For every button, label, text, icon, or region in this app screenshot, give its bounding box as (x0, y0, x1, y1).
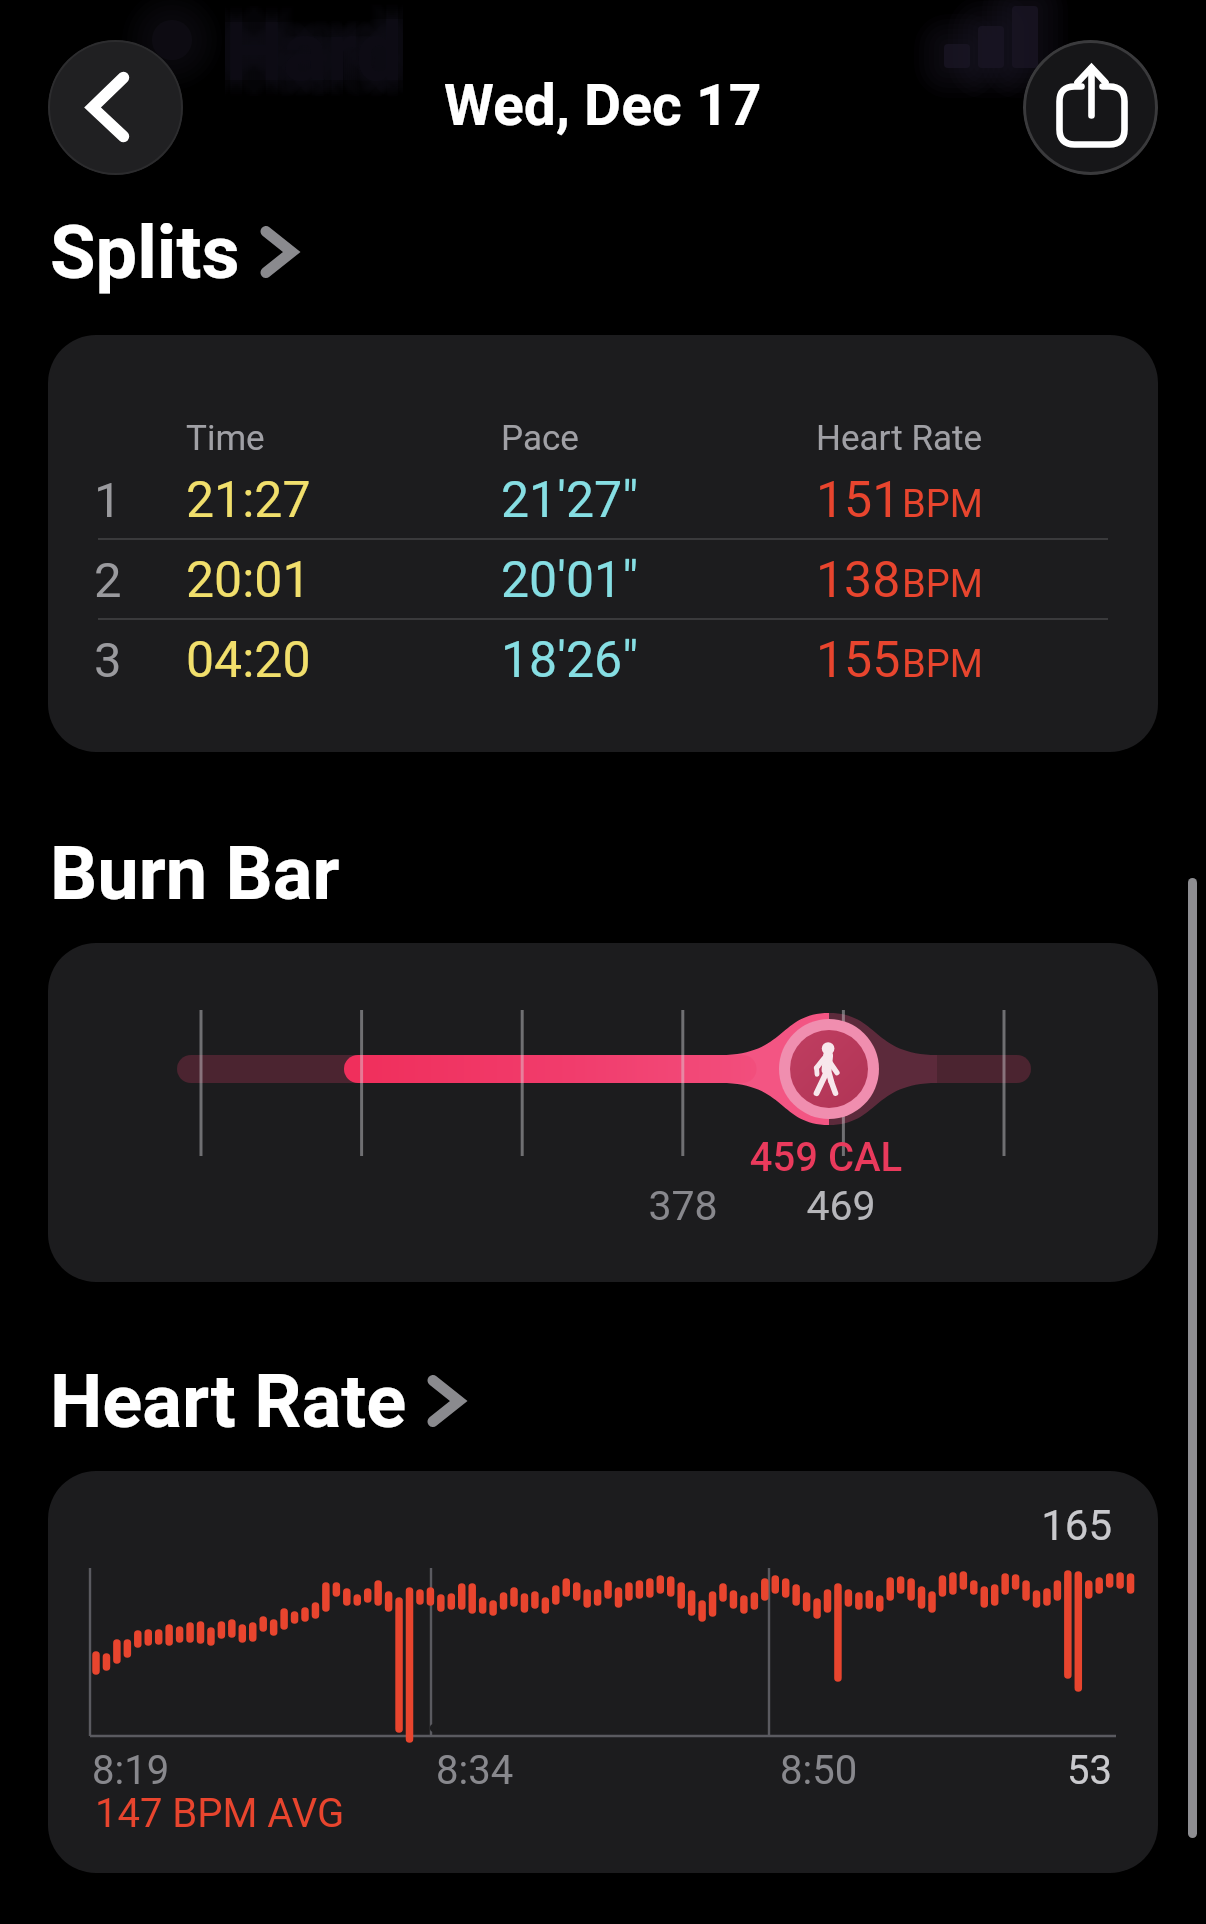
staticText: Hard (225, 4, 391, 100)
staticText: Hard (225, 10, 397, 100)
staticText: BPM (902, 642, 983, 687)
staticText: Hard (225, 16, 403, 100)
staticText: Hard (225, 4, 403, 88)
staticText: 165 (942, 1501, 1112, 1550)
staticText: Hard (225, 4, 403, 94)
staticText: Heart Rate (816, 418, 983, 459)
staticText: 8:34 (436, 1747, 514, 1794)
staticText: 378 (583, 1182, 783, 1230)
staticText: Hard (225, 16, 391, 100)
staticText: Hard (225, 4, 403, 100)
staticText: 469 (741, 1182, 941, 1230)
staticText: Hard (225, 4, 395, 92)
staticText: 20:01 (186, 551, 311, 610)
button[interactable]: Back (48, 40, 183, 175)
staticText: Time (186, 418, 265, 459)
staticText: 155 (816, 631, 901, 690)
staticText: 3 (94, 632, 122, 689)
staticText: Hard (225, 4, 397, 94)
staticText: Hard (225, 4, 397, 100)
staticText: 147 BPM AVG (95, 1790, 345, 1837)
staticText: Hard (235, 14, 403, 100)
staticText: 53 (942, 1747, 1112, 1794)
staticText: Hard (225, 12, 403, 100)
staticText: Hard (225, 18, 403, 100)
staticText: Hard (225, 4, 403, 98)
staticText: Hard (237, 4, 403, 88)
staticText: Hard (237, 4, 403, 100)
staticText: Hard (225, 4, 399, 100)
staticText: 459 CAL (726, 1134, 926, 1181)
staticText: Hard (225, 20, 403, 100)
staticText: BPM (902, 562, 983, 607)
staticText: Hard (225, 4, 403, 100)
staticText: Hard (225, 4, 401, 98)
staticText: Hard (225, 4, 403, 84)
staticText: Hard (227, 4, 403, 100)
staticText: 151 (816, 471, 901, 530)
staticText: 1 (94, 472, 122, 529)
staticText: Burn Bar (50, 830, 340, 916)
staticText: Hard (225, 4, 387, 84)
staticText: Hard (241, 4, 403, 84)
staticText: Hard (225, 4, 403, 86)
staticText: Hard (233, 12, 403, 100)
staticText: Wed, Dec 17 (444, 72, 762, 139)
staticText: Hard (225, 12, 395, 100)
button[interactable]: Heart Rate (50, 1358, 462, 1444)
staticText: Hard (233, 4, 403, 92)
staticText: Hard (225, 20, 387, 100)
staticText: Hard (225, 4, 403, 90)
staticText: Hard (231, 4, 403, 100)
staticText: Hard (225, 4, 403, 100)
staticText: BPM (902, 482, 983, 527)
staticText: Hard (225, 6, 403, 100)
staticText: Hard (229, 4, 403, 100)
staticText: 8:19 (92, 1747, 170, 1794)
staticText: Hard (225, 14, 403, 100)
staticText: Hard (225, 10, 403, 100)
staticText: Hard (229, 4, 403, 96)
staticText: Hard (225, 4, 403, 100)
staticText: Hard (225, 4, 403, 100)
staticText: Hard (225, 14, 393, 100)
staticText: Hard (225, 4, 391, 88)
staticText: Hard (231, 4, 403, 94)
staticText: Hard (225, 4, 403, 100)
button[interactable]: Share (1023, 40, 1158, 175)
staticText: Hard (225, 4, 387, 100)
staticText: 18'26" (501, 631, 639, 690)
staticText: Hard (235, 4, 403, 90)
staticText: Hard (225, 4, 403, 96)
staticText: Hard (227, 6, 403, 100)
staticText: Hard (225, 4, 403, 100)
staticText: Hard (225, 4, 393, 100)
staticText: 21'27" (501, 471, 639, 530)
button[interactable]: Time (48, 335, 1158, 752)
staticText: Hard (225, 4, 393, 90)
staticText: 2 (94, 552, 122, 609)
staticText: Hard (225, 4, 403, 100)
staticText: Hard (225, 4, 403, 100)
staticText: Hard (225, 4, 399, 96)
staticText: Hard (241, 4, 403, 100)
staticText: Splits (50, 209, 240, 295)
button[interactable]: Splits (50, 209, 295, 295)
staticText: Hard (225, 4, 403, 100)
staticText: Hard (241, 20, 403, 100)
staticText: Hard (225, 4, 403, 100)
staticText: Hard (225, 4, 403, 100)
staticText: Hard (225, 4, 403, 100)
staticText: Pace (501, 418, 579, 459)
staticText: Hard (225, 8, 403, 100)
staticText: Hard (225, 6, 401, 100)
button[interactable]: 459 CAL (48, 943, 1158, 1282)
staticText: 138 (816, 551, 901, 610)
staticText: Hard (225, 4, 389, 86)
button[interactable]: 165 (48, 1471, 1158, 1873)
staticText: Hard (225, 4, 403, 100)
staticText: 21:27 (186, 471, 311, 530)
staticText: Heart Rate (50, 1358, 407, 1444)
staticText: Hard (229, 8, 403, 100)
staticText: Hard (237, 16, 403, 100)
